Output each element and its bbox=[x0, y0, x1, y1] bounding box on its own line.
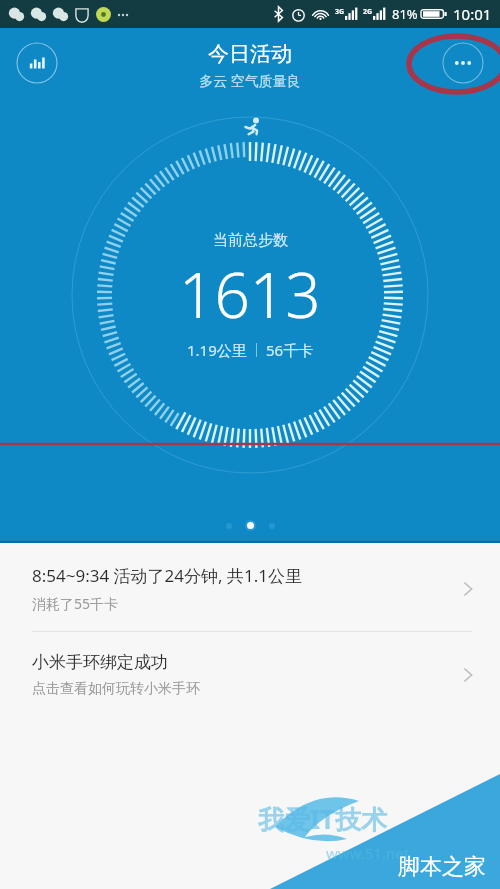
staticText: 多云 空气质量良 bbox=[199, 71, 301, 90]
staticText: 今日活动 bbox=[208, 41, 292, 67]
staticText: 1.19公里 bbox=[187, 340, 247, 360]
staticText: 2G bbox=[363, 7, 373, 17]
staticText: www.51.net bbox=[326, 843, 410, 863]
button[interactable]: More options bbox=[442, 42, 484, 84]
staticText: 脚本之家 bbox=[398, 853, 486, 881]
staticText: 81% bbox=[392, 5, 418, 23]
button[interactable]: Statistics bbox=[16, 42, 58, 84]
staticText: 10:01 bbox=[453, 4, 492, 24]
staticText: 消耗了55千卡 bbox=[32, 594, 119, 613]
staticText: 点击查看如何玩转小米手环 bbox=[32, 680, 200, 698]
staticText: 3G bbox=[335, 7, 345, 17]
staticText: 1613 bbox=[179, 252, 321, 336]
staticText: 56千卡 bbox=[266, 340, 314, 360]
button[interactable]: 小米手环绑定成功 bbox=[0, 632, 500, 717]
staticText: 当前总步数 bbox=[213, 231, 288, 250]
staticText: 8:54~9:34 活动了24分钟, 共1.1公里 bbox=[32, 564, 303, 587]
staticText: 我爱IT技术 bbox=[258, 801, 388, 837]
button[interactable]: 8:54~9:34 活动了24分钟, 共1.1公里 bbox=[0, 546, 500, 631]
staticText: 小米手环绑定成功 bbox=[32, 652, 168, 673]
